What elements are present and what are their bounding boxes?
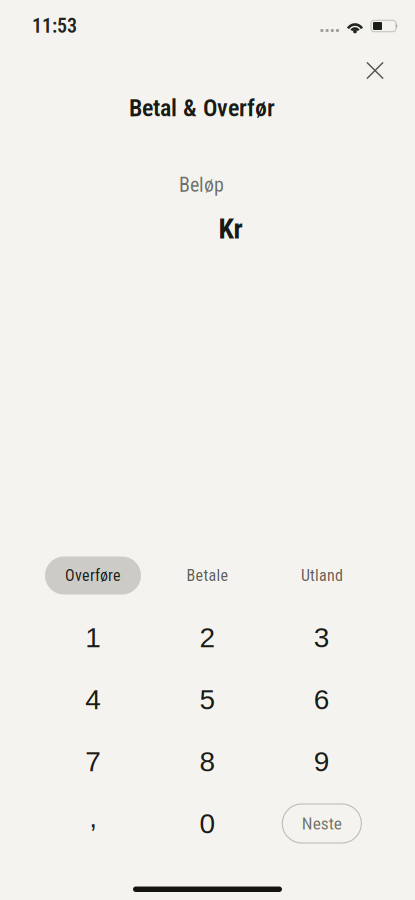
button[interactable]: Neste: [265, 792, 379, 854]
staticText: 9: [314, 746, 330, 777]
button[interactable]: 3: [265, 606, 379, 668]
staticText: ,: [89, 802, 97, 833]
button[interactable]: 7: [36, 730, 150, 792]
button[interactable]: 0: [150, 792, 265, 854]
button[interactable]: 4: [36, 668, 150, 730]
button[interactable]: 1: [36, 606, 150, 668]
staticText: 2: [199, 622, 215, 653]
staticText: Kr: [218, 213, 242, 245]
staticText: 7: [85, 746, 101, 777]
button[interactable]: 6: [265, 668, 379, 730]
staticText: Betale: [186, 566, 228, 585]
button[interactable]: ,: [36, 792, 150, 854]
staticText: 4: [85, 684, 101, 715]
button[interactable]: 8: [150, 730, 265, 792]
staticText: 6: [314, 684, 330, 715]
staticText: 5: [199, 684, 215, 715]
staticText: 0: [199, 808, 215, 839]
button[interactable]: Utland: [274, 556, 370, 594]
staticText: Overføre: [65, 566, 121, 585]
staticText: Neste: [302, 813, 342, 834]
button[interactable]: 2: [150, 606, 265, 668]
button[interactable]: 9: [265, 730, 379, 792]
staticText: Beløp: [179, 173, 224, 197]
button[interactable]: Betale: [159, 556, 255, 594]
button[interactable]: Overføre: [45, 556, 141, 594]
staticText: Betal & Overfør: [129, 94, 275, 122]
staticText: 11:53: [32, 14, 77, 38]
staticText: Utland: [301, 566, 343, 585]
button[interactable]: Close: [355, 50, 395, 96]
staticText: 8: [199, 746, 215, 777]
staticText: 1: [85, 622, 101, 653]
staticText: 3: [314, 622, 330, 653]
button[interactable]: 5: [150, 668, 265, 730]
